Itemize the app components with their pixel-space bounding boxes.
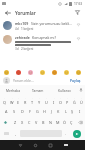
staticText: 3d bbox=[15, 47, 19, 51]
staticText: X bbox=[21, 120, 24, 125]
button[interactable]: Tamam bbox=[25, 85, 51, 95]
button[interactable]: I bbox=[76, 106, 83, 117]
button[interactable]: · bbox=[64, 95, 71, 106]
staticText: Yorum ekle... bbox=[13, 78, 34, 83]
button[interactable]: Kullanıcı bbox=[51, 85, 77, 95]
staticText: A bbox=[5, 109, 8, 114]
staticText: J bbox=[51, 109, 53, 114]
button[interactable]: J bbox=[48, 106, 55, 117]
staticText: Tamam bbox=[32, 88, 44, 92]
button[interactable]: wow bbox=[75, 69, 82, 76]
staticText: V bbox=[35, 120, 38, 125]
button[interactable]: zehirade bbox=[0, 32, 85, 52]
button[interactable]: · bbox=[71, 95, 78, 106]
staticText: D bbox=[21, 109, 24, 114]
button[interactable]: laugh bbox=[51, 69, 58, 76]
button[interactable]: Voice input bbox=[77, 85, 85, 95]
staticText: F bbox=[29, 109, 31, 114]
button[interactable]: sad bbox=[63, 69, 70, 76]
staticText: P bbox=[66, 100, 69, 105]
button[interactable]: · bbox=[8, 95, 15, 106]
button[interactable]: fire bbox=[15, 69, 22, 76]
staticText: Ü bbox=[80, 100, 83, 105]
button[interactable]: · bbox=[43, 95, 50, 106]
button[interactable]: Send bbox=[73, 130, 81, 138]
button[interactable]: , bbox=[12, 128, 20, 139]
button[interactable]: smile bbox=[39, 69, 46, 76]
button[interactable]: Backspace bbox=[75, 117, 85, 128]
staticText: N bbox=[49, 120, 52, 125]
button[interactable]: F bbox=[26, 106, 34, 117]
button[interactable]: Ö bbox=[61, 117, 68, 128]
button[interactable]: Recents bbox=[43, 140, 58, 150]
staticText: Paylaş bbox=[70, 78, 81, 83]
button[interactable]: Home bbox=[28, 140, 43, 150]
staticText: , bbox=[15, 131, 17, 136]
staticText: Y bbox=[38, 100, 41, 105]
staticText: U bbox=[45, 100, 48, 105]
staticText: mkc109 bbox=[15, 21, 29, 26]
button[interactable]: Shift bbox=[0, 117, 11, 128]
button[interactable]: X bbox=[19, 117, 26, 128]
staticText: M bbox=[56, 120, 60, 125]
staticText: K bbox=[57, 109, 60, 114]
button[interactable]: A bbox=[2, 106, 10, 117]
button[interactable]: Back bbox=[3, 8, 12, 17]
staticText: 4d bbox=[15, 27, 19, 31]
button[interactable]: D bbox=[18, 106, 26, 117]
button[interactable]: · bbox=[36, 95, 43, 106]
button[interactable]: Z bbox=[11, 117, 19, 128]
button[interactable]: G bbox=[34, 106, 41, 117]
staticText: zehirade bbox=[15, 35, 30, 40]
button[interactable]: M bbox=[54, 117, 61, 128]
button[interactable]: L bbox=[62, 106, 69, 117]
button[interactable]: C bbox=[26, 117, 33, 128]
button[interactable]: · bbox=[22, 95, 29, 106]
button[interactable]: Like bbox=[75, 35, 82, 42]
button[interactable]: clap bbox=[27, 69, 34, 76]
button[interactable]: Ş bbox=[69, 106, 76, 117]
button[interactable]: B bbox=[40, 117, 47, 128]
button[interactable]: Yorum ekle... bbox=[0, 76, 85, 85]
staticText: Konuşmak mı? bbox=[32, 35, 56, 40]
staticText: I bbox=[53, 100, 55, 105]
staticText: C bbox=[28, 120, 31, 125]
staticText: E bbox=[17, 100, 20, 105]
button[interactable]: N bbox=[47, 117, 54, 128]
staticText: Ç bbox=[70, 120, 73, 125]
button[interactable] bbox=[1, 128, 12, 139]
staticText: O bbox=[59, 100, 62, 105]
button[interactable]: heart bbox=[3, 69, 10, 76]
button[interactable]: Hide keyboard bbox=[58, 140, 73, 150]
button[interactable]: K bbox=[55, 106, 62, 117]
button[interactable]: V bbox=[33, 117, 40, 128]
button[interactable]: Ç bbox=[68, 117, 75, 128]
button[interactable]: Merhaba bbox=[0, 85, 25, 95]
button[interactable]: S bbox=[10, 106, 18, 117]
button[interactable]: · bbox=[57, 95, 64, 106]
staticText: T bbox=[31, 100, 34, 105]
button[interactable]: · bbox=[29, 95, 36, 106]
button[interactable]: Paylaş bbox=[69, 77, 82, 84]
button[interactable]: mkc109 bbox=[0, 18, 85, 32]
button[interactable]: Back bbox=[13, 140, 28, 150]
button[interactable]: H bbox=[41, 106, 48, 117]
button[interactable]: Like bbox=[75, 21, 82, 28]
button[interactable]: · bbox=[0, 95, 8, 106]
staticText: 1 beğeni bbox=[21, 27, 34, 31]
button[interactable]: Filter bbox=[73, 8, 82, 17]
button[interactable]: · bbox=[78, 95, 85, 106]
button[interactable]: · bbox=[50, 95, 57, 106]
button[interactable]: · bbox=[15, 95, 22, 106]
staticText: Yorumlar bbox=[15, 10, 36, 16]
staticText: H bbox=[43, 109, 46, 114]
